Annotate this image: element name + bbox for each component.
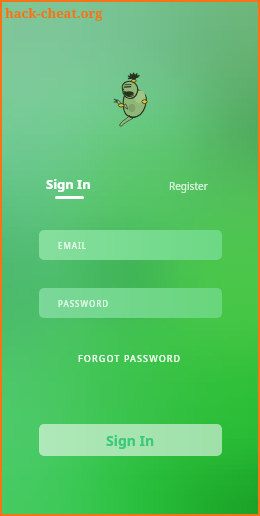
staticText: FORGOT PASSWORD — [78, 352, 182, 364]
button[interactable]: Register — [165, 175, 212, 197]
staticText: Register — [169, 179, 208, 193]
button[interactable]: FORGOT PASSWORD — [74, 348, 186, 368]
button[interactable]: PASSWORD — [39, 288, 222, 318]
staticText: hack-cheat.org — [5, 4, 103, 22]
button[interactable]: Sign In — [44, 173, 93, 201]
other: App logo — [111, 72, 153, 127]
button[interactable]: EMAIL — [39, 230, 222, 260]
staticText: Sign In — [46, 175, 91, 193]
staticText: EMAIL — [58, 240, 88, 251]
staticText: PASSWORD — [58, 298, 110, 309]
button[interactable]: Sign In — [39, 424, 222, 456]
staticText: Sign In — [106, 431, 155, 450]
